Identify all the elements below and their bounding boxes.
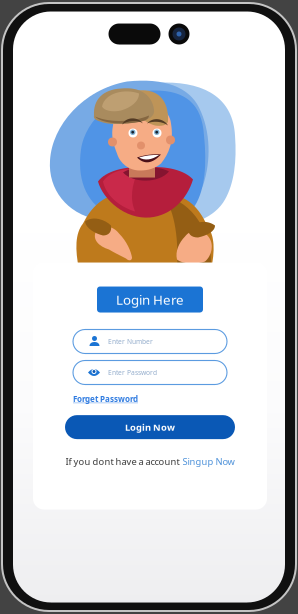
staticText: Forget Password xyxy=(73,393,138,404)
button[interactable]: Singup Now xyxy=(182,455,234,467)
button[interactable]: Enter Password xyxy=(73,360,227,384)
staticText: Login Now xyxy=(125,421,175,433)
staticText: Singup Now xyxy=(182,455,234,467)
staticText: If you dont have a account xyxy=(65,455,179,467)
button[interactable]: Login Now xyxy=(65,415,235,439)
button[interactable]: Forget Password xyxy=(73,393,138,404)
button[interactable]: Enter Number xyxy=(73,329,227,353)
staticText: Login Here xyxy=(116,291,184,308)
staticText: Enter Password xyxy=(108,368,157,377)
button[interactable]: Login Here xyxy=(97,286,203,312)
staticText: Enter Number xyxy=(108,337,153,346)
